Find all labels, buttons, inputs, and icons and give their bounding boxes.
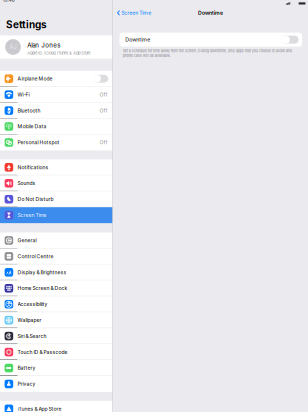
staticText: Settings <box>6 19 47 31</box>
staticText: Touch ID & Passcode <box>17 349 67 355</box>
button[interactable]: Sounds <box>0 175 112 191</box>
button[interactable]: Control Centre <box>0 248 112 264</box>
staticText: Bluetooth <box>17 107 40 114</box>
staticText: Set a schedule for time away from the sc… <box>123 49 292 58</box>
staticText: General <box>17 237 36 243</box>
staticText: Do Not Disturb <box>17 196 53 202</box>
staticText: Mobile Data <box>17 123 46 130</box>
button[interactable]: Downtime <box>119 33 302 47</box>
button[interactable]: Wallpaper <box>0 312 112 328</box>
button[interactable]: Wi-Fi <box>0 87 112 102</box>
staticText: Alan Jones <box>27 42 60 49</box>
button[interactable]: iTunes & App Store <box>0 401 112 412</box>
button[interactable]: Touch ID & Passcode <box>0 344 112 360</box>
staticText: Siri & Search <box>17 333 46 339</box>
button[interactable]: Personal Hotspot <box>0 134 112 150</box>
button[interactable]: Accessibility <box>0 296 112 312</box>
button[interactable]: Siri & Search <box>0 328 112 344</box>
staticText: 19:40 <box>3 0 15 3</box>
staticText: Wi-Fi <box>17 92 29 98</box>
staticText: Home Screen & Dock <box>17 285 67 291</box>
staticText: Sounds <box>17 180 35 186</box>
button[interactable]: Screen Time <box>0 207 112 223</box>
button[interactable]: Do Not Disturb <box>0 191 112 207</box>
button[interactable]: AJ <box>0 35 112 59</box>
staticText: Screen Time <box>17 212 46 218</box>
button[interactable]: Battery <box>0 360 112 376</box>
staticText: Privacy <box>17 381 35 387</box>
staticText: Apple ID, iCloud, iTunes & App Store <box>27 51 90 55</box>
staticText: AJ <box>10 44 17 50</box>
staticText: iTunes & App Store <box>17 406 61 412</box>
button[interactable]: Screen Time <box>113 8 151 18</box>
staticText: Screen Time <box>121 10 151 16</box>
staticText: Battery <box>17 365 35 371</box>
staticText: Airplane Mode <box>17 76 52 82</box>
staticText: Off <box>99 92 107 98</box>
staticText: Display & Brightness <box>17 269 66 275</box>
staticText: Personal Hotspot <box>17 139 59 145</box>
staticText: Wallpaper <box>17 317 41 323</box>
staticText: Downtime <box>125 37 150 43</box>
button[interactable]: Home Screen & Dock <box>0 280 112 296</box>
staticText: Off <box>99 139 107 145</box>
button[interactable]: Display & Brightness <box>0 264 112 280</box>
staticText: Accessibility <box>17 301 47 307</box>
button[interactable]: Airplane Mode <box>0 71 112 87</box>
staticText: Notifications <box>17 164 48 170</box>
staticText: Downtime <box>198 10 223 16</box>
button[interactable]: Bluetooth <box>0 103 112 118</box>
button[interactable]: Notifications <box>0 159 112 175</box>
button[interactable]: Privacy <box>0 376 112 392</box>
staticText: Off <box>99 107 107 114</box>
staticText: Control Centre <box>17 253 53 259</box>
button[interactable]: General <box>0 232 112 248</box>
button[interactable]: Mobile Data <box>0 118 112 134</box>
